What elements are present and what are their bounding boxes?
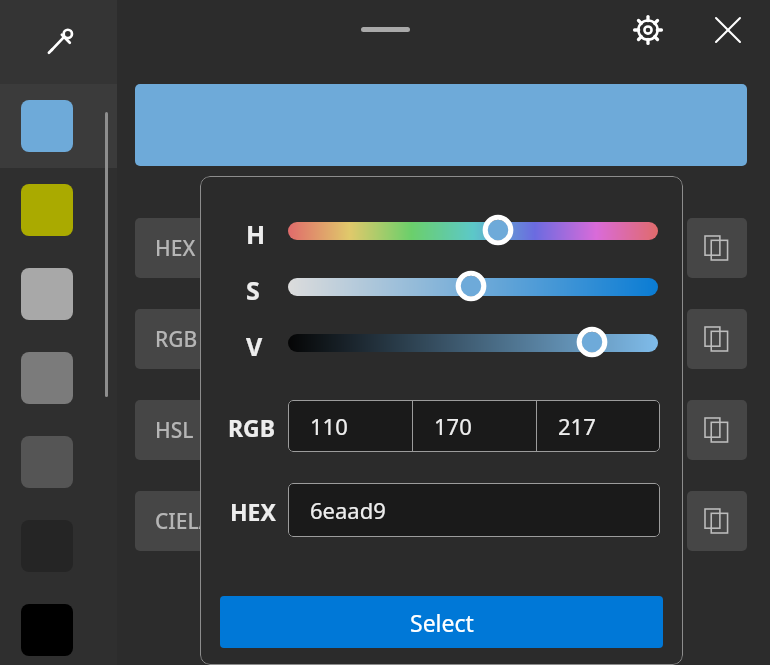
staticText: H [246,217,266,251]
button[interactable]: H slider [288,222,658,240]
staticText: CIELAB [155,507,227,536]
button[interactable]: Color swatch 7 [0,588,117,665]
staticText: RGB [228,412,276,443]
staticText: HEX [230,496,276,527]
staticText: 170 [434,411,472,441]
button[interactable]: Color swatch 6 [0,504,117,588]
staticText: 217 [558,411,596,441]
button[interactable]: HEX [135,218,275,278]
button[interactable]: Copy HSL [687,400,747,460]
button[interactable]: Copy HEX [687,218,747,278]
button[interactable]: HSL [135,400,275,460]
button[interactable]: Select [220,596,663,648]
button[interactable]: 170 [412,400,536,452]
staticText: S [246,273,260,307]
button[interactable]: Pick color [0,0,117,84]
staticText: HEX [155,234,196,263]
button[interactable]: Close [704,6,752,54]
button[interactable]: 217 [536,400,660,452]
button[interactable]: Settings [624,6,672,54]
button[interactable]: Color swatch 1 [0,84,117,168]
button[interactable]: RGB [135,309,275,369]
staticText: Select [410,607,474,638]
staticText: HSL [155,416,194,445]
button[interactable]: Color swatch 4 [0,336,117,420]
button[interactable]: Color swatch 5 [0,420,117,504]
button[interactable]: Copy RGB [687,309,747,369]
button[interactable]: Color swatch 2 [0,168,117,252]
staticText: 110 [310,411,348,441]
button[interactable]: CIELAB [135,491,275,551]
button[interactable]: Color swatch 3 [0,252,117,336]
staticText: V [246,329,263,363]
button[interactable]: S slider [288,278,658,296]
button[interactable]: Copy CIELAB [687,491,747,551]
staticText: 6eaad9 [310,495,386,525]
button[interactable]: Color preview [135,84,747,166]
staticText: RGB [155,325,198,354]
button[interactable]: 6eaad9 [288,483,660,537]
button[interactable]: V slider [288,334,658,352]
button[interactable]: 110 [288,400,412,452]
